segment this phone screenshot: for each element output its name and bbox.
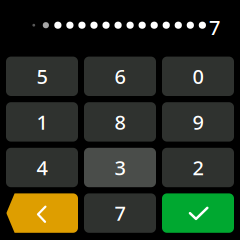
staticText: 0 bbox=[192, 63, 203, 90]
staticText: 2 bbox=[192, 154, 203, 181]
button[interactable]: 2 bbox=[162, 148, 234, 187]
staticText: 4 bbox=[36, 154, 47, 181]
button[interactable]: Confirm bbox=[162, 193, 234, 233]
button[interactable]: Delete bbox=[6, 193, 78, 233]
staticText: 9 bbox=[192, 109, 203, 135]
staticText: 3 bbox=[114, 154, 125, 181]
button[interactable]: 7 bbox=[84, 193, 156, 233]
button[interactable]: 0 bbox=[162, 57, 234, 96]
button[interactable]: 9 bbox=[162, 102, 234, 142]
staticText: 7 bbox=[114, 200, 125, 226]
staticText: 5 bbox=[36, 63, 47, 90]
button[interactable]: 6 bbox=[84, 57, 156, 96]
staticText: 8 bbox=[114, 109, 125, 135]
staticText: 6 bbox=[114, 63, 125, 90]
button[interactable]: 5 bbox=[6, 57, 78, 96]
button[interactable]: 8 bbox=[84, 102, 156, 142]
button[interactable]: 4 bbox=[6, 148, 78, 187]
staticText: 1 bbox=[36, 109, 47, 135]
staticText: 7 bbox=[209, 14, 220, 40]
button[interactable]: 3 bbox=[84, 148, 156, 187]
button[interactable]: 1 bbox=[6, 102, 78, 142]
